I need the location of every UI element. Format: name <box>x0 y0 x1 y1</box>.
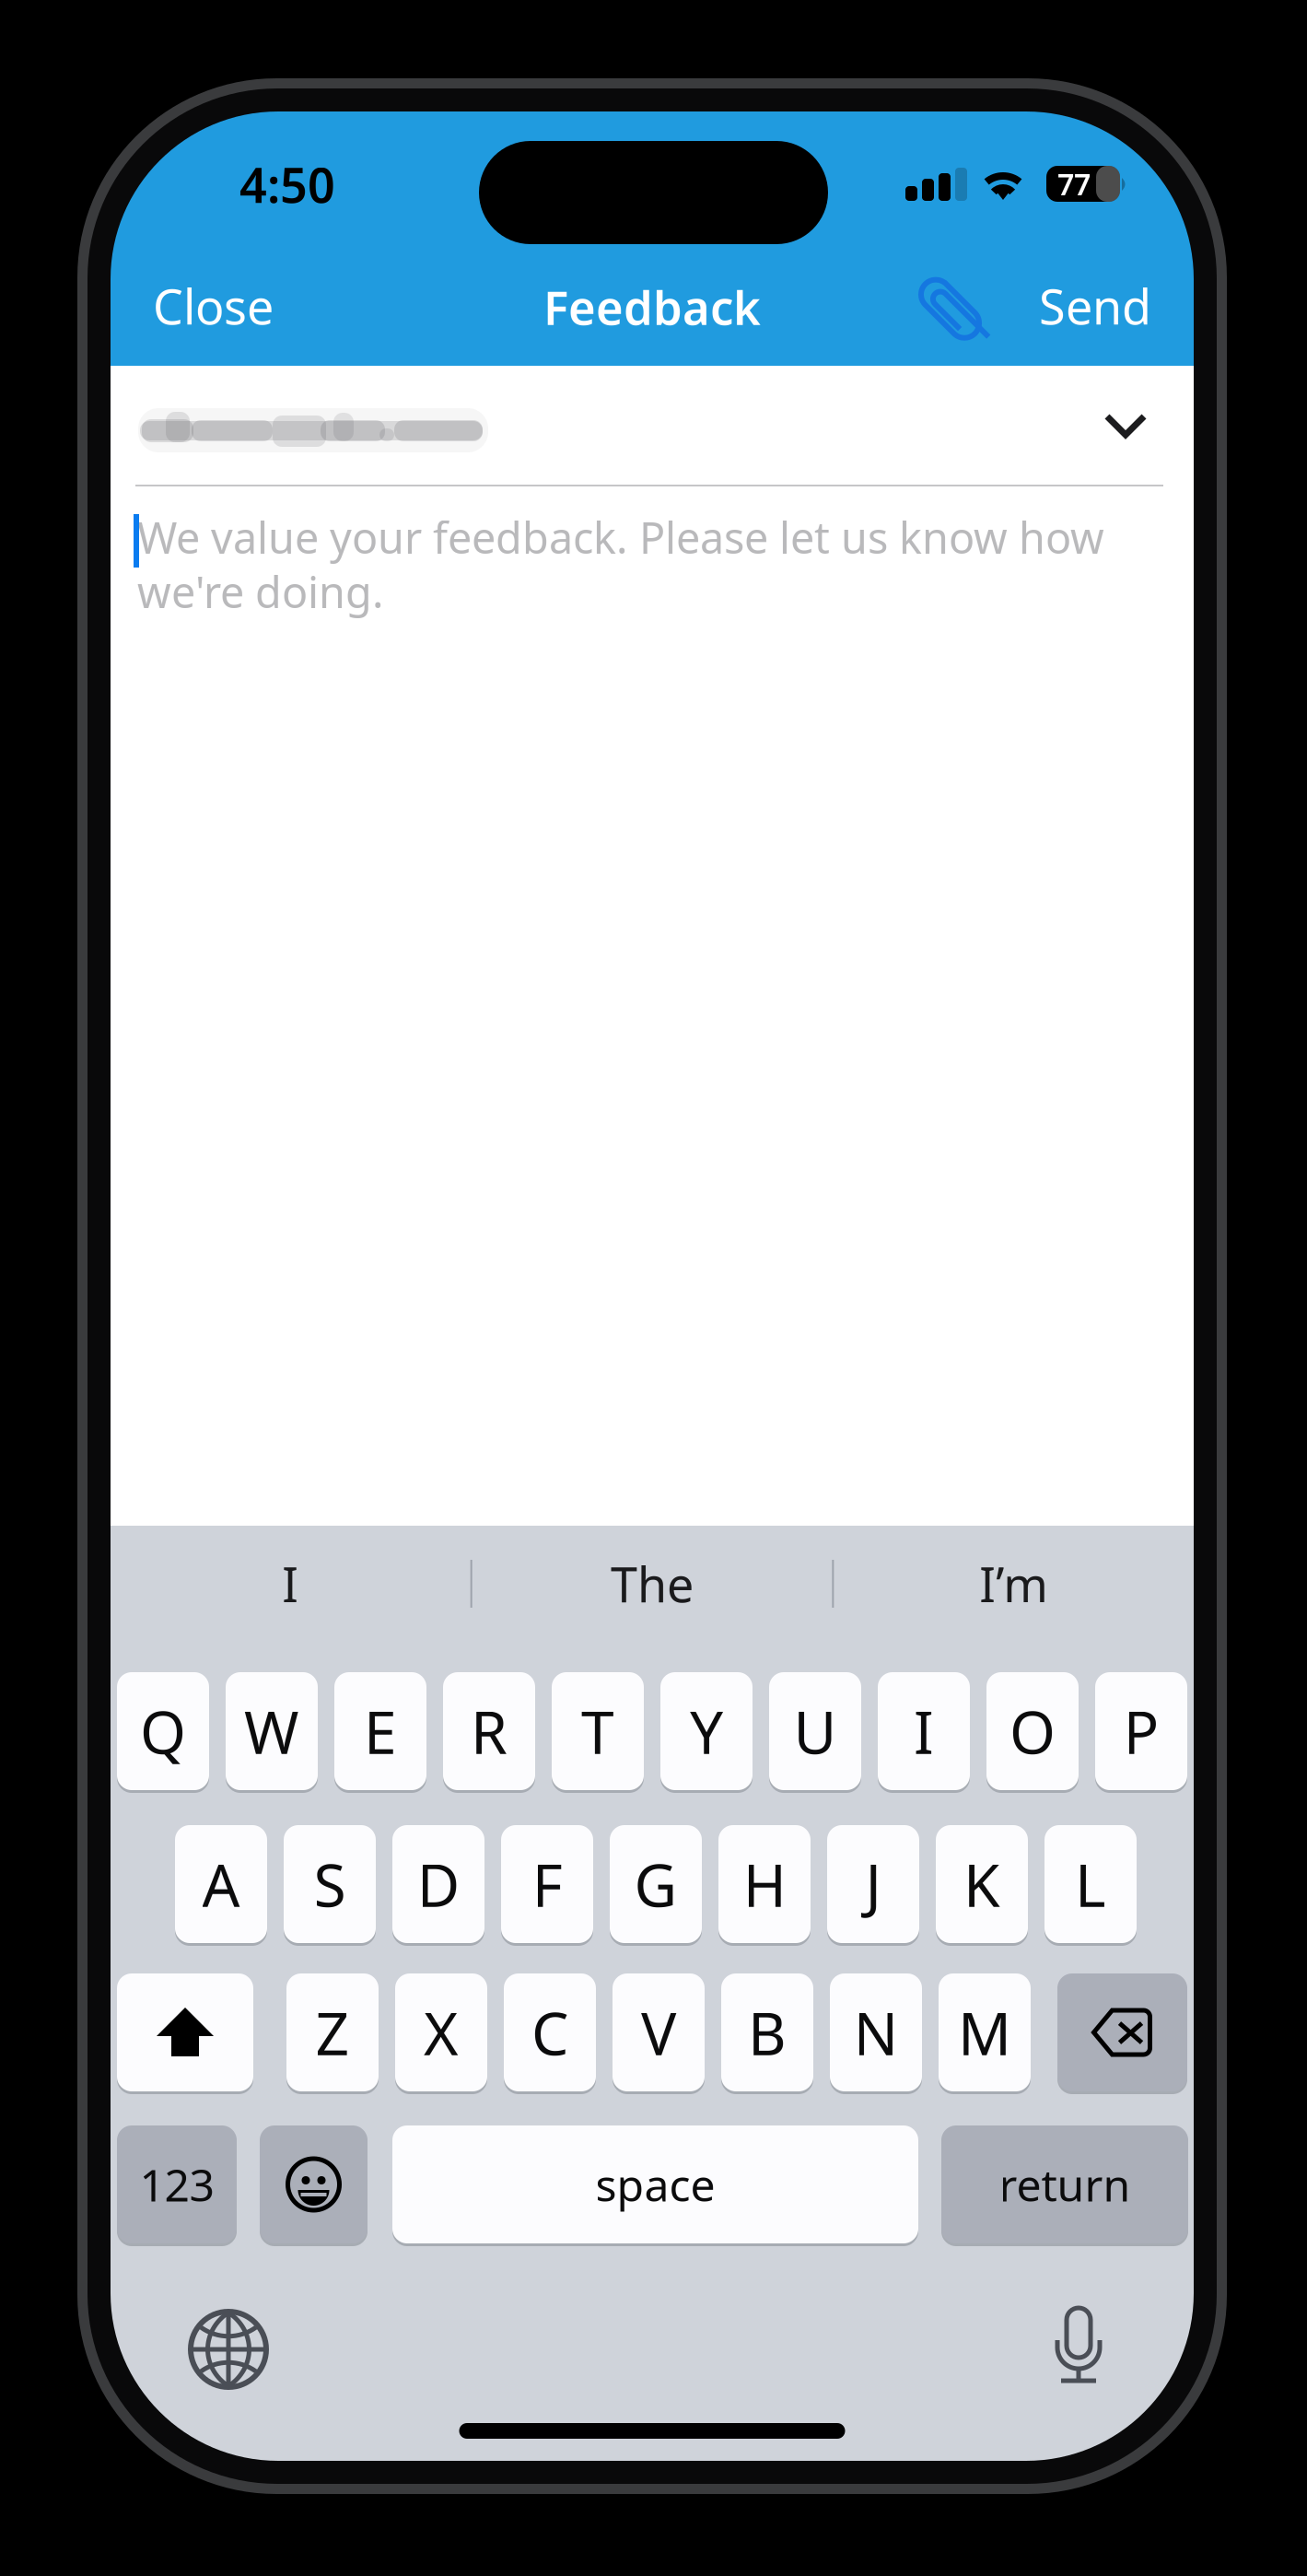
staticText: X <box>424 1993 459 2072</box>
button[interactable]: P <box>1095 1669 1187 1793</box>
staticText: space <box>595 2155 715 2214</box>
button[interactable]: U <box>769 1669 861 1793</box>
button[interactable]: S <box>284 1822 376 1946</box>
staticText: 4:50 <box>239 152 335 216</box>
staticText: K <box>963 1845 1000 1923</box>
staticText: We value your feedback. Please let us kn… <box>137 509 1104 566</box>
button[interactable]: O <box>986 1669 1079 1793</box>
button[interactable]: Send <box>986 251 1151 361</box>
button[interactable]: X <box>395 1971 487 2094</box>
staticText: Y <box>690 1692 723 1770</box>
button[interactable]: Close <box>153 251 337 361</box>
staticText: G <box>634 1845 677 1923</box>
staticText: 77 <box>1057 164 1091 203</box>
staticText: M <box>958 1993 1011 2072</box>
staticText: return <box>999 2155 1131 2214</box>
button[interactable]: Emoji <box>260 2123 368 2246</box>
staticText: Z <box>315 1993 350 2072</box>
button[interactable]: D <box>392 1822 484 1946</box>
staticText: C <box>531 1993 568 2072</box>
staticText: L <box>1075 1845 1106 1923</box>
staticText: N <box>853 1993 899 2072</box>
staticText: H <box>743 1845 786 1923</box>
button[interactable]: A <box>175 1822 267 1946</box>
button[interactable]: L <box>1044 1822 1137 1946</box>
staticText: S <box>314 1845 346 1923</box>
button[interactable]: Dictation <box>1023 2291 1134 2402</box>
staticText: W <box>244 1692 299 1770</box>
button[interactable]: Q <box>117 1669 209 1793</box>
button[interactable]: Z <box>286 1971 379 2094</box>
button[interactable]: space <box>392 2123 918 2246</box>
button[interactable]: E <box>334 1669 426 1793</box>
staticText: U <box>794 1692 837 1770</box>
staticText: Close <box>153 274 274 338</box>
staticText: R <box>471 1692 508 1770</box>
staticText: The <box>611 1552 694 1616</box>
button[interactable]: W <box>226 1669 318 1793</box>
staticText: I’m <box>979 1552 1048 1616</box>
button[interactable]: Y <box>660 1669 753 1793</box>
button[interactable]: T <box>552 1669 644 1793</box>
staticText: 123 <box>140 2155 214 2214</box>
button[interactable]: V <box>613 1971 705 2094</box>
staticText: Q <box>140 1692 186 1770</box>
staticText: A <box>202 1845 240 1923</box>
button[interactable]: I’m <box>834 1526 1194 1642</box>
staticText: T <box>581 1692 614 1770</box>
staticText: F <box>532 1845 562 1923</box>
button[interactable]: return <box>941 2123 1188 2246</box>
staticText: J <box>865 1845 881 1923</box>
button[interactable]: H <box>718 1822 811 1946</box>
button[interactable]: M <box>939 1971 1031 2094</box>
button[interactable]: 123 <box>117 2123 237 2246</box>
button[interactable]: Next keyboard <box>173 2294 284 2405</box>
button[interactable]: K <box>936 1822 1028 1946</box>
button[interactable]: N <box>830 1971 922 2094</box>
button[interactable]: Shift <box>117 1971 253 2094</box>
button[interactable]: Show recipients <box>1075 380 1176 472</box>
button[interactable]: J <box>827 1822 919 1946</box>
button[interactable]: F <box>501 1822 593 1946</box>
staticText: we're doing. <box>137 563 384 620</box>
staticText: O <box>1009 1692 1056 1770</box>
button[interactable]: C <box>504 1971 596 2094</box>
button[interactable]: G <box>610 1822 702 1946</box>
staticText: I <box>914 1692 934 1770</box>
staticText: P <box>1123 1692 1159 1770</box>
staticText: Send <box>1039 274 1151 338</box>
button[interactable]: Attach file <box>898 256 1018 367</box>
button[interactable]: The <box>472 1526 832 1642</box>
staticText: V <box>641 1993 676 2072</box>
button[interactable]: Delete <box>1057 1971 1187 2094</box>
button[interactable]: I <box>878 1669 970 1793</box>
button[interactable]: R <box>443 1669 535 1793</box>
button[interactable]: I <box>111 1526 470 1642</box>
staticText: E <box>364 1692 397 1770</box>
staticText: I <box>282 1552 299 1616</box>
button[interactable]: B <box>721 1971 813 2094</box>
staticText: Feedback <box>543 276 761 338</box>
staticText: B <box>748 1993 787 2072</box>
staticText: D <box>417 1845 460 1923</box>
